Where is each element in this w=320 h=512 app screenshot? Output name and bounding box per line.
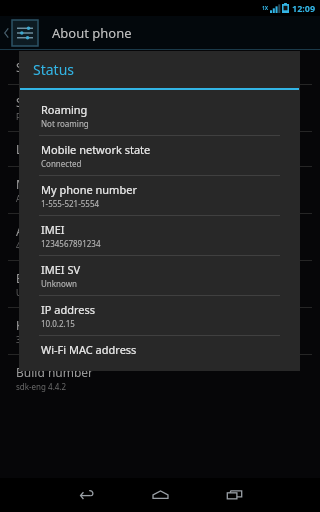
staticText: Kernel version (16, 317, 97, 333)
staticText: 1234567891234 (41, 238, 101, 249)
staticText: Android SDK built for x86 (16, 193, 111, 204)
staticText: System updates (16, 59, 106, 75)
staticText: Baseband version (16, 270, 117, 286)
staticText: Not roaming (41, 118, 89, 129)
button[interactable]: Legal information (0, 132, 320, 166)
button[interactable]: IP address (19, 296, 300, 335)
button[interactable]: Kernel version (0, 308, 320, 354)
staticText: Wi-Fi MAC address (41, 342, 137, 357)
button[interactable]: Navigate up (0, 16, 38, 49)
button[interactable]: Roaming (19, 96, 300, 135)
staticText: About phone (52, 24, 132, 42)
button[interactable]: Recent apps (201, 478, 267, 512)
staticText: Build number (16, 364, 94, 380)
staticText: 1-555-521-5554 (41, 198, 100, 209)
staticText: 12:09 (292, 2, 316, 14)
staticText: Phone number, signal, etc. (16, 111, 116, 122)
button[interactable]: IMEI SV (19, 256, 300, 295)
staticText: sdk-eng 4.4.2 (16, 381, 67, 392)
staticText: IP address (41, 302, 96, 317)
staticText: Legal information (16, 141, 117, 157)
button[interactable]: Back (53, 478, 119, 512)
button[interactable]: Model number (0, 167, 320, 213)
button[interactable]: Status (0, 85, 320, 131)
staticText: My phone number (41, 182, 137, 197)
staticText: Roaming (41, 102, 88, 117)
button[interactable]: My phone number (19, 176, 300, 215)
staticText: Status (33, 60, 75, 79)
staticText: Status (16, 94, 52, 110)
button[interactable]: Baseband version (0, 261, 320, 307)
staticText: 10.0.2.15 (41, 318, 75, 329)
staticText: Model number (16, 176, 100, 192)
button[interactable]: Build number (0, 355, 320, 401)
staticText: 1X (262, 5, 269, 12)
button[interactable]: Home (127, 478, 193, 512)
button[interactable]: Wi-Fi MAC address (19, 336, 300, 363)
staticText: Unknown (41, 278, 77, 289)
staticText: 4.4.2 (16, 240, 35, 251)
staticText: Unknown (16, 287, 52, 298)
staticText: Mobile network state (41, 142, 151, 157)
button[interactable]: Mobile network state (19, 136, 300, 175)
staticText: Android version (16, 223, 106, 239)
staticText: 3.4.67-01titi (16, 334, 61, 345)
staticText: Connected (41, 158, 82, 169)
staticText: IMEI SV (41, 262, 81, 277)
button[interactable]: Android version (0, 214, 320, 260)
button[interactable]: IMEI (19, 216, 300, 255)
button[interactable]: System updates (0, 50, 320, 84)
staticText: IMEI (41, 222, 65, 237)
